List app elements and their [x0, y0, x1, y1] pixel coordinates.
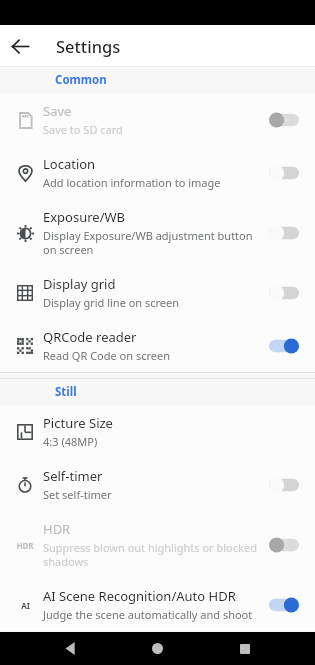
staticText: Common: [55, 72, 107, 88]
button[interactable]: Toggle: [267, 110, 301, 130]
button[interactable]: Display grid: [0, 266, 315, 319]
button[interactable]: Toggle: [267, 595, 301, 615]
button[interactable]: Recents: [228, 632, 261, 665]
staticText: HDR: [16, 540, 34, 551]
button[interactable]: Home: [141, 632, 174, 665]
staticText: QRCode reader: [43, 328, 137, 346]
button[interactable]: HDR: [0, 511, 315, 578]
button[interactable]: Toggle: [267, 163, 301, 183]
staticText: Save: [43, 102, 72, 120]
button[interactable]: Toggle: [267, 283, 301, 303]
button[interactable]: Toggle: [267, 535, 301, 555]
button[interactable]: AI: [0, 578, 315, 631]
staticText: Save to SD card: [43, 122, 123, 137]
staticText: Set self-timer: [43, 487, 112, 502]
button[interactable]: Back: [0, 26, 40, 66]
staticText: AI Scene Recognition/Auto HDR: [43, 587, 236, 605]
button[interactable]: Toggle: [267, 336, 301, 356]
staticText: Display grid: [43, 275, 116, 293]
button[interactable]: Self-timer: [0, 458, 315, 511]
staticText: Display Exposure/WB adjustment button on…: [43, 228, 261, 257]
staticText: Still: [55, 384, 77, 400]
button[interactable]: Toggle: [267, 475, 301, 495]
button[interactable]: QRCode reader: [0, 319, 315, 372]
staticText: Picture Size: [43, 414, 113, 432]
staticText: Settings: [56, 35, 121, 57]
staticText: Add location information to image: [43, 175, 221, 190]
staticText: Suppress blown out highlights or blocked…: [43, 540, 261, 569]
staticText: HDR: [43, 520, 71, 538]
button[interactable]: Toggle: [267, 223, 301, 243]
staticText: Exposure/WB: [43, 208, 126, 226]
staticText: Display grid line on screen: [43, 295, 180, 310]
staticText: Self-timer: [43, 467, 103, 485]
staticText: 4:3 (48MP): [43, 434, 98, 449]
staticText: Judge the scene automatically and shoot: [43, 607, 253, 622]
button[interactable]: Picture Size: [0, 405, 315, 458]
button[interactable]: Location: [0, 146, 315, 199]
button[interactable]: Back: [54, 632, 87, 665]
staticText: Location: [43, 155, 96, 173]
button[interactable]: Exposure/WB: [0, 199, 315, 266]
button[interactable]: Save: [0, 93, 315, 146]
staticText: AI: [21, 600, 30, 611]
staticText: Read QR Code on screen: [43, 348, 170, 363]
